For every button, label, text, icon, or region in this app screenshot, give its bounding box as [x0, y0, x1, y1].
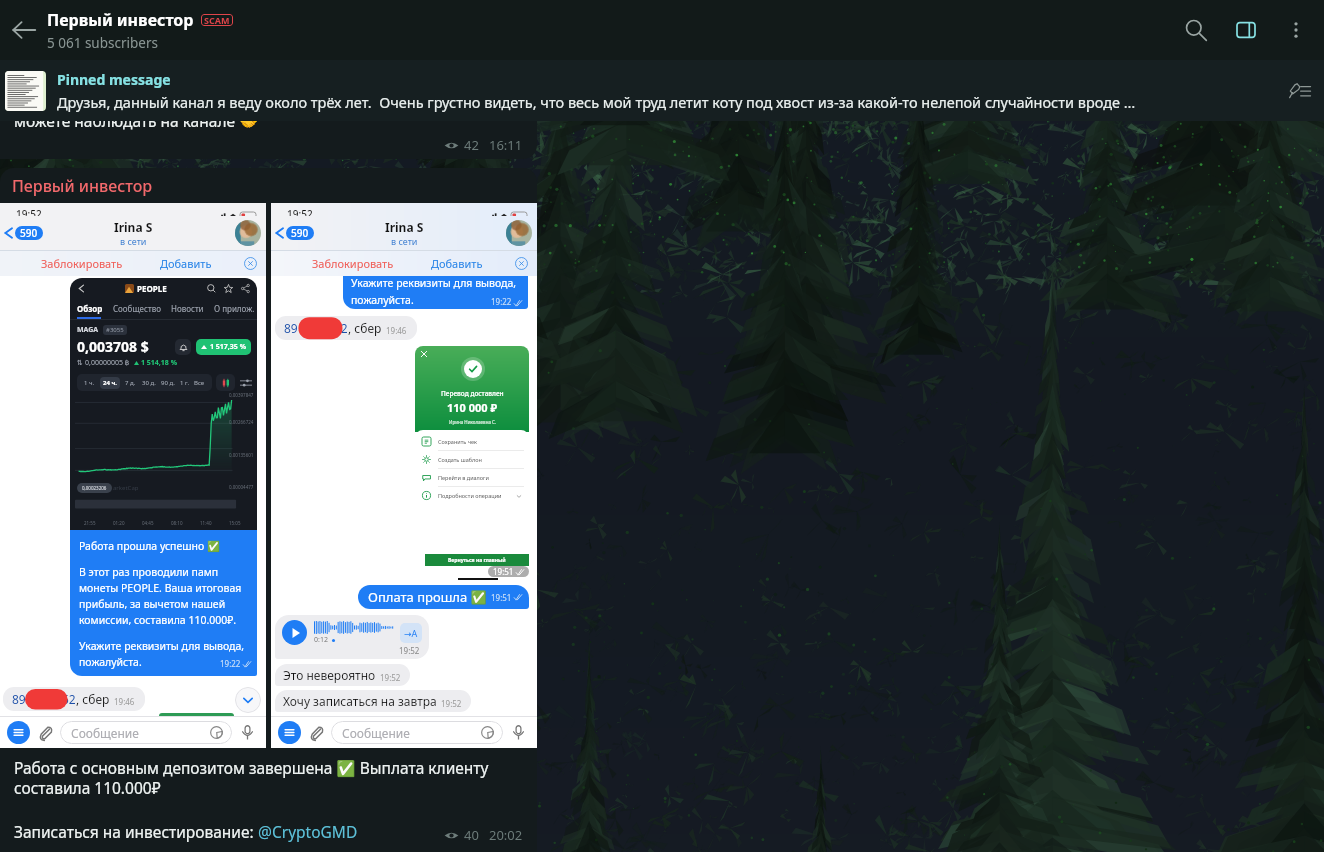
staticText: 0,00135601: [229, 452, 254, 458]
staticText: можете наблюдать на канале 🤝: [14, 121, 259, 131]
staticText: Это невероятно: [283, 667, 376, 683]
staticText: Заблокировать: [312, 256, 394, 271]
staticText: 16:11: [489, 136, 523, 154]
staticText: пожалуйста.: [351, 293, 414, 307]
staticText: 11:40: [200, 520, 212, 526]
staticText: Работа прошла успешно ✅: [79, 539, 221, 553]
button[interactable]: Pinned messages list: [1276, 67, 1324, 115]
staticText: 24 ч.: [103, 379, 117, 387]
staticText: →A: [404, 627, 418, 639]
staticText: в сети: [391, 235, 418, 247]
staticText: Оплата прошла ✅: [368, 588, 487, 606]
staticText: MAGA: [77, 325, 99, 335]
staticText: 19:52: [287, 207, 313, 220]
staticText: Сохранить чек: [438, 438, 477, 445]
staticText: 52: [334, 320, 348, 336]
staticText: Irina S: [385, 219, 424, 235]
staticText: 19:46: [386, 325, 407, 336]
staticText: Подробности операции: [438, 492, 502, 499]
staticText: Сообщество: [113, 303, 161, 314]
staticText: Хочу записаться на завтра: [283, 693, 437, 709]
staticText: 590: [291, 226, 309, 240]
staticText: PEOPLE: [137, 283, 167, 294]
staticText: 110 000 ₽: [447, 400, 498, 415]
staticText: в сети: [120, 235, 147, 247]
staticText: 52: [62, 691, 76, 707]
staticText: 89: [284, 320, 298, 336]
staticText: В этот раз проводили памп монеты PEOPLE.…: [79, 565, 251, 627]
staticText: 0,003708 $: [77, 337, 149, 356]
staticText: 19:52: [16, 207, 42, 220]
staticText: 19:52: [380, 672, 401, 683]
staticText: @CryptoGMD: [258, 821, 358, 842]
staticText: Перевод доставлен: [441, 389, 504, 398]
staticText: 19:52: [441, 698, 462, 709]
staticText: 08:10: [171, 520, 183, 526]
button[interactable]: Pinned message: [0, 60, 1276, 121]
staticText: 7 д.: [125, 379, 136, 387]
staticText: 0,00004477: [229, 484, 254, 490]
staticText: 89: [12, 691, 26, 707]
staticText: Обзор: [77, 303, 103, 314]
staticText: Irina S: [114, 219, 153, 235]
staticText: Записаться на инвестирование:: [14, 821, 258, 842]
staticText: 590: [20, 226, 38, 240]
staticText: 19:51: [491, 592, 512, 603]
staticText: Первый инвестор: [47, 9, 194, 31]
staticText: 0,00000005 ฿: [85, 358, 130, 368]
staticText: , сбер: [348, 320, 382, 336]
staticText: Первый инвестор: [12, 175, 153, 197]
staticText: 40: [464, 826, 479, 844]
staticText: 15:05: [229, 520, 241, 526]
staticText: 42: [464, 136, 479, 154]
staticText: #3055: [106, 326, 124, 334]
staticText: Ирина Николаевна С.: [449, 419, 497, 425]
staticText: Заблокировать: [41, 256, 123, 271]
staticText: О прилож.: [214, 303, 255, 314]
staticText: 0,00266724: [229, 419, 254, 425]
staticText: Друзья, данный канал я веду около трёх л…: [57, 92, 1136, 112]
button[interactable]: Split view: [1221, 0, 1271, 60]
button[interactable]: Первый инвестор: [0, 168, 537, 852]
staticText: 0,00023206: [82, 485, 107, 491]
staticText: Все: [194, 379, 205, 387]
staticText: 0,00397847: [226, 395, 254, 402]
staticText: Укажите реквизиты для вывода,: [351, 276, 517, 290]
staticText: Добавить: [431, 256, 483, 271]
staticText: Перейти в диалоги: [438, 474, 489, 481]
staticText: SCAM: [204, 14, 230, 26]
staticText: 19:51: [493, 566, 514, 577]
button[interactable]: More options: [1271, 0, 1321, 60]
staticText: Вернуться на главный: [448, 557, 506, 564]
staticText: Сообщение: [71, 725, 139, 741]
staticText: Укажите реквизиты для вывода, пожалуйста…: [79, 639, 251, 669]
staticText: 20:02: [489, 826, 523, 844]
staticText: Работа с основным депозитом завершена ✅ …: [14, 757, 527, 799]
staticText: Pinned message: [57, 70, 171, 89]
staticText: 5 061 subscribers: [47, 34, 158, 52]
staticText: 19:46: [114, 696, 135, 707]
staticText: 1 ч.: [84, 379, 95, 387]
staticText: 90 д.: [161, 379, 175, 387]
button[interactable]: Search: [1171, 0, 1221, 60]
button[interactable]: Back: [0, 0, 47, 60]
button[interactable]: @CryptoGMD: [258, 821, 358, 842]
staticText: 1 г.: [180, 379, 189, 387]
staticText: 1 514,18 %: [141, 358, 177, 368]
staticText: Создать шаблон: [438, 456, 482, 463]
staticText: 01:20: [113, 520, 125, 526]
staticText: 04:45: [142, 520, 154, 526]
staticText: 19:52: [399, 645, 420, 656]
staticText: 1 517,35 %: [210, 342, 246, 352]
staticText: Сообщение: [342, 725, 410, 741]
staticText: 0,00397847: [229, 392, 254, 398]
staticText: arketCap: [113, 484, 139, 492]
button[interactable]: можете наблюдать на канале 🤝: [0, 121, 537, 159]
staticText: ⇅: [77, 359, 83, 367]
staticText: 19:22: [220, 658, 241, 669]
staticText: , сбер: [76, 691, 110, 707]
staticText: 0:12: [314, 635, 328, 645]
staticText: 30 д.: [142, 379, 156, 387]
staticText: Добавить: [160, 256, 212, 271]
staticText: 21:55: [84, 520, 96, 526]
